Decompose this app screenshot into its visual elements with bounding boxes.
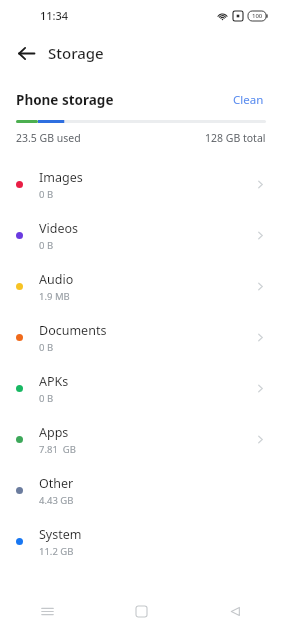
staticText: Videos bbox=[39, 220, 79, 237]
button[interactable]: APKs bbox=[0, 363, 282, 414]
staticText: 1.9 MB bbox=[39, 290, 70, 303]
button[interactable]: Back bbox=[8, 35, 44, 71]
button[interactable]: Other bbox=[0, 465, 282, 516]
staticText: Apps bbox=[39, 424, 69, 441]
staticText: Documents bbox=[39, 322, 107, 339]
button[interactable]: Home bbox=[94, 592, 188, 630]
button[interactable]: Images bbox=[0, 159, 282, 210]
staticText: Storage bbox=[48, 43, 104, 63]
staticText: 0 B bbox=[39, 392, 54, 405]
staticText: 11.2 GB bbox=[39, 545, 74, 558]
staticText: 100 bbox=[252, 12, 263, 20]
staticText: Images bbox=[39, 169, 83, 186]
staticText: 11:34 bbox=[40, 8, 69, 23]
button[interactable]: Documents bbox=[0, 312, 282, 363]
button[interactable]: Back bbox=[188, 592, 282, 630]
staticText: 0 B bbox=[39, 341, 54, 354]
button[interactable]: Videos bbox=[0, 210, 282, 261]
staticText: 4.43 GB bbox=[39, 494, 74, 507]
button[interactable]: Recent apps bbox=[0, 592, 94, 630]
staticText: Clean bbox=[233, 92, 264, 108]
staticText: 23.5 GB used bbox=[16, 131, 81, 145]
button[interactable]: System bbox=[0, 516, 282, 567]
button[interactable]: Apps bbox=[0, 414, 282, 465]
button[interactable]: Audio bbox=[0, 261, 282, 312]
staticText: APKs bbox=[39, 373, 69, 390]
staticText: 128 GB total bbox=[205, 131, 266, 145]
button[interactable]: Clean bbox=[231, 90, 266, 110]
staticText: Other bbox=[39, 475, 74, 492]
staticText: Phone storage bbox=[16, 91, 114, 109]
staticText: 0 B bbox=[39, 188, 54, 201]
staticText: 7.81 GB bbox=[39, 443, 76, 456]
staticText: Audio bbox=[39, 271, 74, 288]
staticText: 0 B bbox=[39, 239, 54, 252]
staticText: System bbox=[39, 526, 82, 543]
